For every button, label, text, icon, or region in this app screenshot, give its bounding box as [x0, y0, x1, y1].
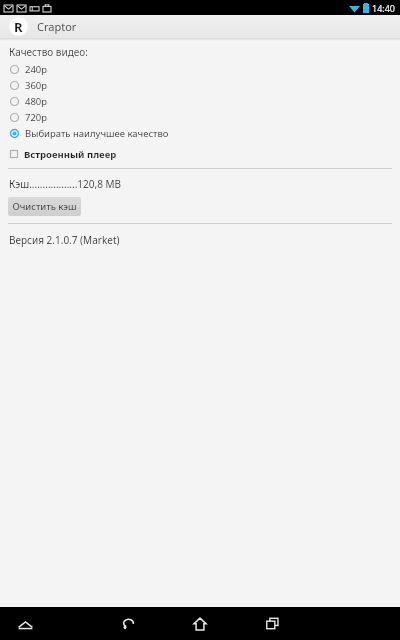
button[interactable]: 240p [0, 61, 400, 77]
button[interactable]: Выбирать наилучшее качество [0, 125, 400, 141]
button[interactable]: R [0, 15, 400, 38]
button[interactable]: Expand [12, 611, 38, 637]
staticText: Качество видео: [9, 45, 88, 59]
button[interactable]: Встроенный плеер [0, 146, 400, 162]
button[interactable]: 360p [0, 77, 400, 93]
staticText: Версия 2.1.0.7 (Market) [9, 233, 120, 247]
button[interactable]: Home [183, 607, 217, 640]
staticText: Выбирать наилучшее качество [25, 127, 169, 140]
staticText: 240p [25, 63, 48, 76]
staticText: 360p [25, 79, 48, 92]
button[interactable]: Back [111, 607, 145, 640]
staticText: 720p [25, 111, 48, 124]
staticText: Кэш..................120,8 MB [9, 177, 122, 191]
staticText: Очистить кэш [12, 200, 77, 213]
button[interactable]: Очистить кэш [8, 197, 81, 216]
staticText: R [14, 18, 23, 36]
staticText: 480p [25, 95, 48, 108]
staticText: Встроенный плеер [24, 148, 117, 161]
button[interactable]: 720p [0, 109, 400, 125]
button[interactable]: Recent apps [255, 607, 289, 640]
staticText: 14:40 [372, 2, 396, 14]
button[interactable]: 480p [0, 93, 400, 109]
staticText: Craptor [37, 19, 77, 34]
